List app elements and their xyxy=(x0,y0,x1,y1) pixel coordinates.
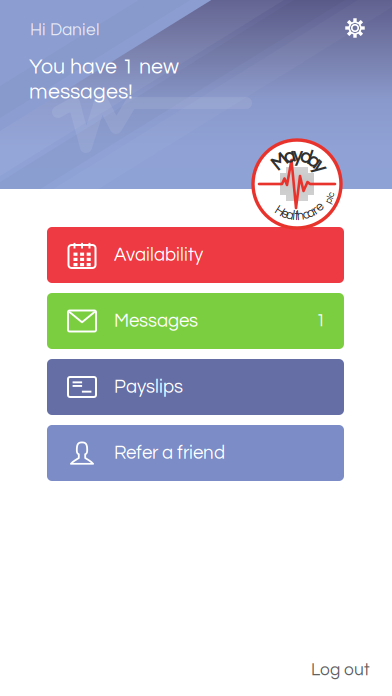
staticText: M xyxy=(272,153,287,172)
staticText: H xyxy=(275,204,284,218)
staticText: a xyxy=(307,206,315,220)
staticText: a xyxy=(284,147,295,167)
staticText: y xyxy=(315,158,324,177)
button[interactable]: Availability xyxy=(47,227,344,283)
staticText: l xyxy=(329,193,331,202)
button[interactable]: Log out xyxy=(260,650,370,690)
staticText: Payslips xyxy=(114,377,183,397)
staticText: y xyxy=(293,146,302,166)
staticText: messages! xyxy=(29,81,133,103)
staticText: You have 1 new xyxy=(29,56,179,78)
staticText: a xyxy=(308,152,319,171)
staticText: e xyxy=(316,200,323,214)
staticText: r xyxy=(313,203,318,217)
staticText: Hi Daniel xyxy=(30,21,100,39)
staticText: Log out xyxy=(311,661,370,679)
staticText: Messages xyxy=(114,311,198,331)
staticText: t xyxy=(294,209,298,223)
button[interactable]: Refer a friend xyxy=(47,425,344,481)
staticText: e xyxy=(282,207,289,220)
staticText: 1 xyxy=(316,312,326,330)
button[interactable]: Settings xyxy=(333,6,377,50)
staticText: c xyxy=(303,208,310,221)
staticText: p xyxy=(326,195,332,205)
staticText: h xyxy=(297,209,305,223)
staticText: Refer a friend xyxy=(114,443,225,463)
staticText: Availability xyxy=(114,245,203,265)
button[interactable]: Messages xyxy=(47,293,344,349)
button[interactable]: Payslips xyxy=(47,359,344,415)
staticText: a xyxy=(286,208,294,222)
staticText: d xyxy=(300,148,311,167)
staticText: l xyxy=(292,209,295,223)
staticText: c xyxy=(329,190,334,199)
